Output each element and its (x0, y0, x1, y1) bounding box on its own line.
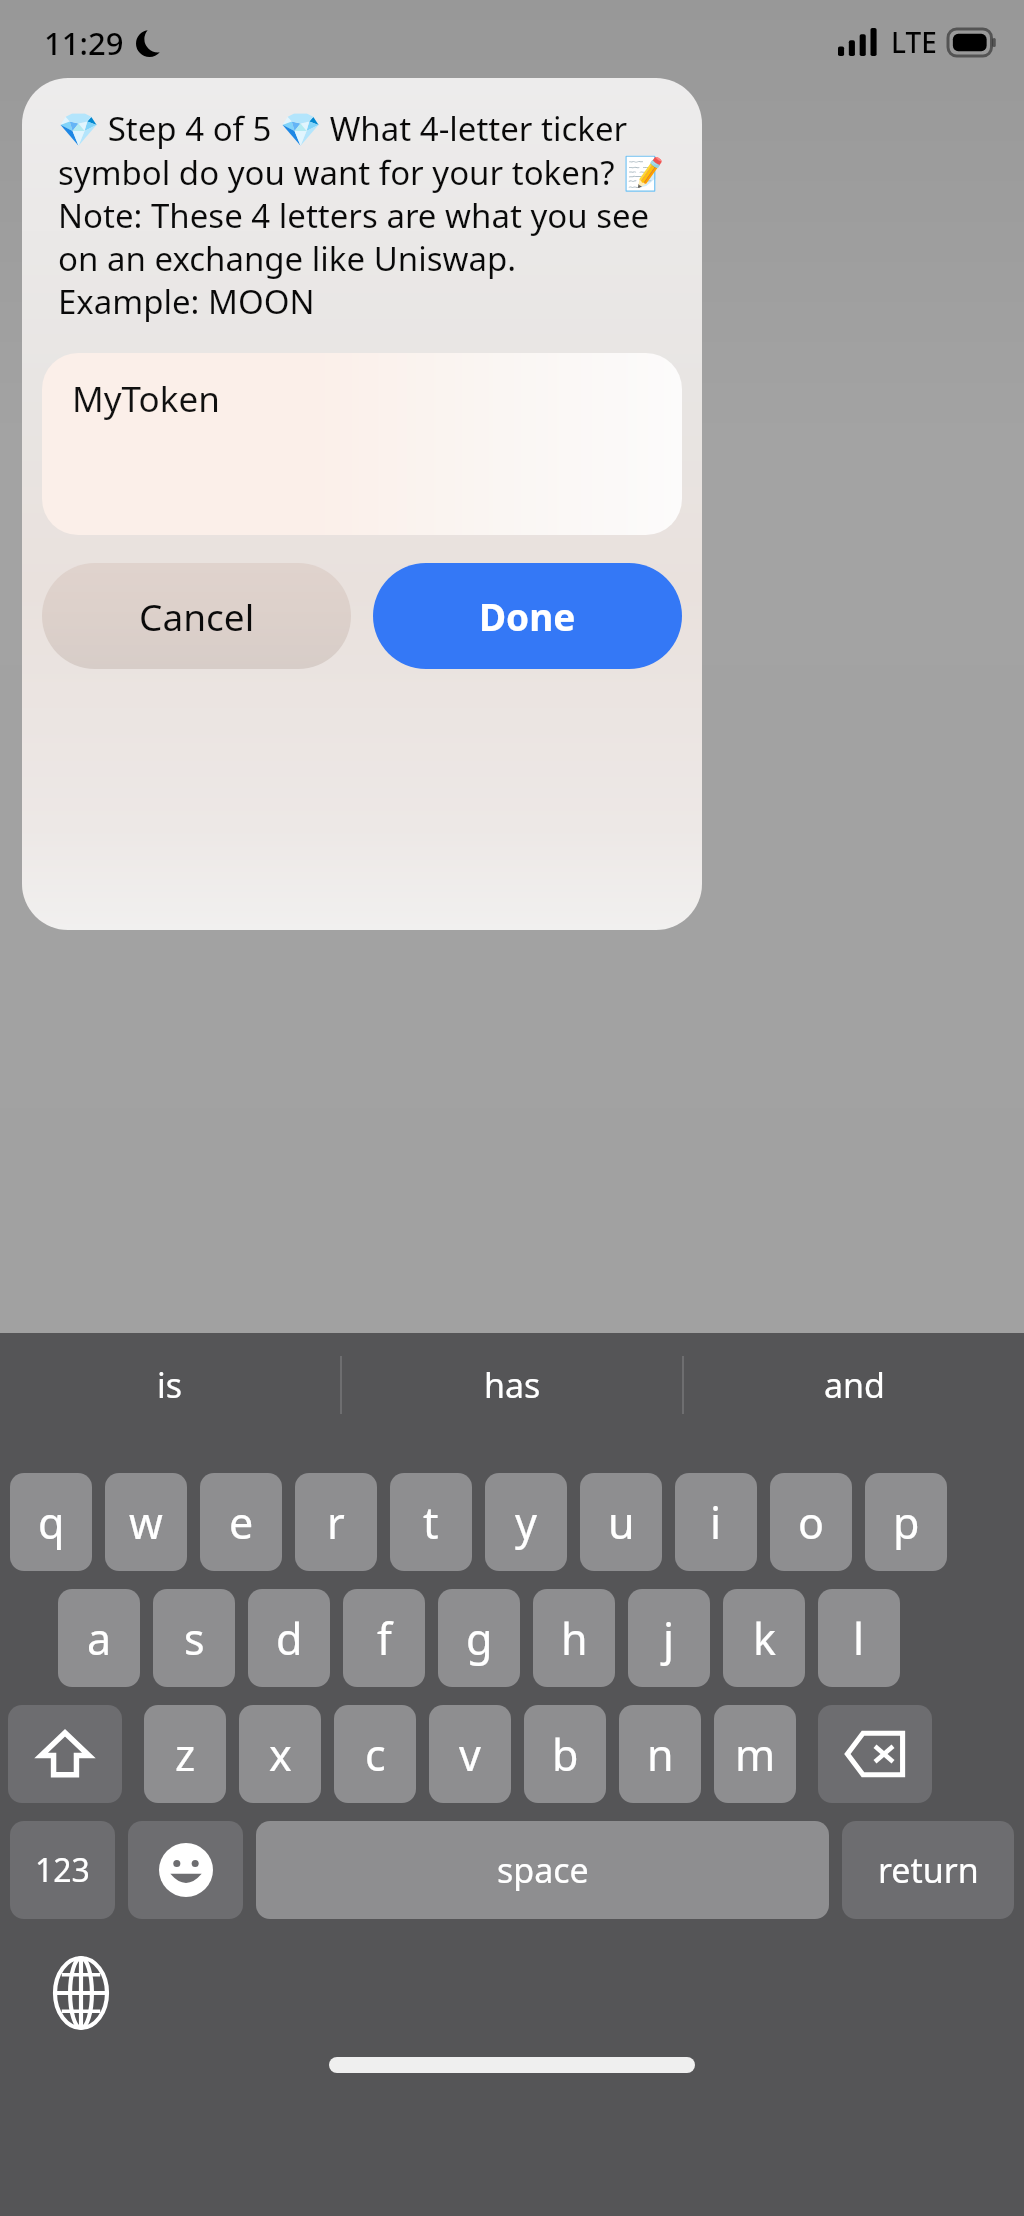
staticText: has (484, 1362, 541, 1408)
button[interactable]: b (524, 1705, 606, 1803)
staticText: h (561, 1609, 588, 1668)
button[interactable]: and (684, 1333, 1024, 1437)
staticText: m (735, 1725, 776, 1784)
button[interactable]: Backspace (818, 1705, 932, 1803)
staticText: f (377, 1609, 392, 1668)
staticText: return (878, 1847, 979, 1893)
staticText: s (184, 1609, 205, 1668)
button[interactable]: s (153, 1589, 235, 1687)
button[interactable]: v (429, 1705, 511, 1803)
staticText: g (466, 1609, 493, 1668)
button[interactable]: t (390, 1473, 472, 1571)
button[interactable]: a (58, 1589, 140, 1687)
button[interactable]: z (144, 1705, 226, 1803)
button[interactable]: d (248, 1589, 330, 1687)
staticText: d (276, 1609, 303, 1668)
button[interactable]: Cancel (42, 563, 351, 669)
button[interactable]: i (675, 1473, 757, 1571)
button[interactable]: space (256, 1821, 829, 1919)
staticText: p (893, 1493, 920, 1552)
button[interactable]: r (295, 1473, 377, 1571)
button[interactable]: Emoji keyboard (128, 1821, 243, 1919)
button[interactable]: MyToken (42, 353, 682, 535)
button[interactable]: f (343, 1589, 425, 1687)
staticText: and (824, 1362, 885, 1408)
button[interactable]: j (628, 1589, 710, 1687)
button[interactable]: h (533, 1589, 615, 1687)
staticText: b (552, 1725, 579, 1784)
staticText: t (423, 1493, 439, 1552)
button[interactable]: x (239, 1705, 321, 1803)
staticText: o (798, 1493, 825, 1552)
button[interactable]: u (580, 1473, 662, 1571)
staticText: q (38, 1493, 65, 1552)
button[interactable]: return (842, 1821, 1014, 1919)
staticText: w (129, 1493, 163, 1552)
staticText: n (647, 1725, 674, 1784)
button[interactable]: l (818, 1589, 900, 1687)
staticText: 💎 Step 4 of 5 💎 What 4-letter ticker sym… (58, 106, 666, 323)
button[interactable]: e (200, 1473, 282, 1571)
staticText: i (710, 1493, 722, 1552)
button[interactable]: q (10, 1473, 92, 1571)
staticText: 11:29 (44, 22, 124, 64)
staticText: MyToken (72, 375, 220, 423)
button[interactable]: p (865, 1473, 947, 1571)
button[interactable]: k (723, 1589, 805, 1687)
staticText: v (459, 1725, 481, 1784)
staticText: r (327, 1493, 345, 1552)
button[interactable]: m (714, 1705, 796, 1803)
button[interactable]: 123 (10, 1821, 115, 1919)
staticText: Done (479, 591, 576, 641)
button[interactable]: g (438, 1589, 520, 1687)
staticText: space (497, 1847, 589, 1893)
staticText: u (608, 1493, 635, 1552)
button[interactable]: is (0, 1333, 340, 1437)
button[interactable]: o (770, 1473, 852, 1571)
staticText: k (753, 1609, 776, 1668)
button[interactable]: y (485, 1473, 567, 1571)
button[interactable]: Shift (8, 1705, 122, 1803)
staticText: z (175, 1725, 196, 1784)
staticText: y (515, 1493, 537, 1552)
button[interactable]: n (619, 1705, 701, 1803)
button[interactable]: Change keyboard language (50, 1955, 112, 2031)
staticText: 123 (35, 1848, 90, 1892)
button[interactable]: w (105, 1473, 187, 1571)
staticText: Cancel (139, 591, 255, 641)
staticText: l (853, 1609, 865, 1668)
staticText: e (229, 1493, 254, 1552)
staticText: is (157, 1362, 183, 1408)
button[interactable]: c (334, 1705, 416, 1803)
staticText: c (365, 1725, 386, 1784)
staticText: x (269, 1725, 292, 1784)
button[interactable]: has (342, 1333, 682, 1437)
staticText: a (87, 1609, 112, 1668)
staticText: LTE (891, 23, 937, 61)
staticText: j (663, 1609, 675, 1668)
button[interactable]: Done (373, 563, 682, 669)
